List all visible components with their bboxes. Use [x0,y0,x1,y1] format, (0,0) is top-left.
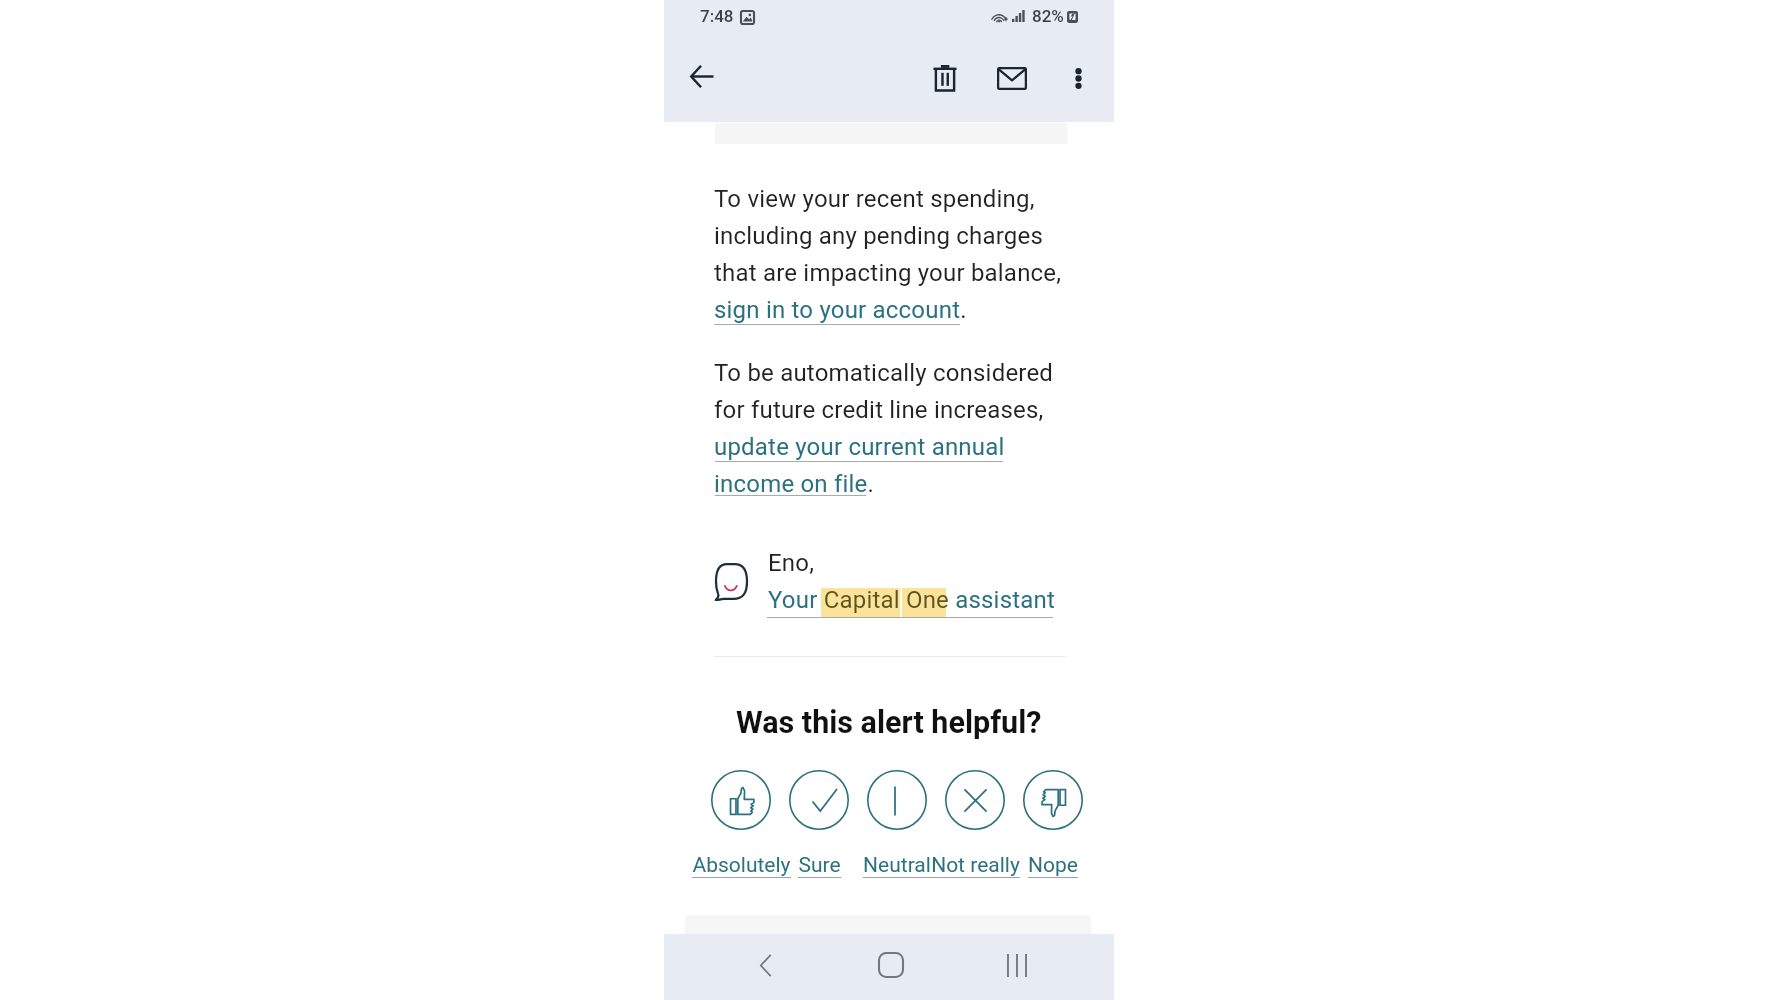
button[interactable]: Home [826,934,952,1000]
button[interactable]: Sure [780,770,858,879]
staticText: Not really [931,853,1020,878]
staticText: 7:48 [700,6,734,26]
button[interactable]: Not really [936,770,1014,879]
staticText: To view your recent spending, including … [714,185,1074,324]
button[interactable]: Nope [1014,770,1092,879]
staticText: Sure [798,853,841,878]
button[interactable]: Delete [922,55,968,101]
staticText: Nope [1028,853,1078,878]
staticText: 82% [1032,6,1064,26]
staticText: Absolutely [692,853,791,878]
button[interactable]: Recent apps [952,934,1078,1000]
button[interactable]: Back [700,934,826,1000]
button[interactable]: More options [1055,55,1101,101]
button[interactable]: Absolutely [702,770,780,879]
staticText: To be automatically considered for futur… [714,359,1074,498]
staticText: Neutral [863,853,931,878]
button[interactable]: Back [679,53,725,99]
button[interactable]: Mark as unread [989,55,1035,101]
button[interactable]: Neutral [858,770,936,879]
staticText: Was this alert helpful? [736,705,1042,741]
staticText: Eno, Your Capital One assistant [768,549,1056,614]
